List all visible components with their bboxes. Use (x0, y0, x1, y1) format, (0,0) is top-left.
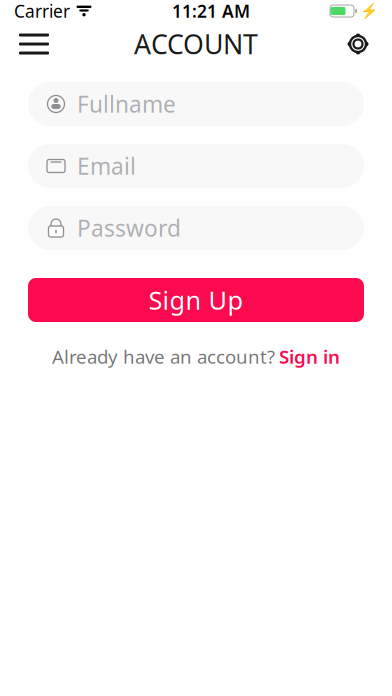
staticText: Password (77, 213, 181, 243)
staticText: Email (77, 151, 136, 181)
button[interactable]: Menu (12, 22, 56, 66)
button[interactable]: Fullname (28, 82, 364, 126)
button[interactable]: Already have an account? (52, 340, 340, 373)
staticText: 11:21 AM (172, 0, 250, 22)
button[interactable]: Settings (336, 22, 380, 66)
staticText: Fullname (77, 89, 176, 119)
staticText: ACCOUNT (134, 26, 258, 62)
staticText: Already have an account? (52, 344, 275, 369)
staticText: Sign Up (148, 283, 243, 317)
button[interactable]: Password (28, 206, 364, 250)
staticText: Carrier (14, 0, 70, 22)
button[interactable]: Email (28, 144, 364, 188)
button[interactable]: Sign Up (28, 278, 364, 322)
staticText: Sign in (279, 344, 340, 369)
staticText: ⚡ (360, 3, 378, 19)
